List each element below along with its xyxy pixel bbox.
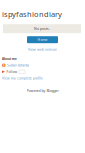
- button[interactable]: B: [2, 63, 29, 68]
- staticText: View my complete profile: [2, 76, 43, 80]
- staticText: ispyfashiondiary: [2, 9, 62, 19]
- staticText: No posts.: [34, 26, 50, 31]
- button[interactable]: View web version: [28, 47, 57, 52]
- staticText: About me: [2, 57, 17, 61]
- staticText: View web version: [28, 47, 57, 52]
- staticText: Home: [37, 37, 47, 42]
- button[interactable]: View my complete profile: [2, 76, 43, 80]
- staticText: B: [3, 63, 5, 67]
- staticText: Powered by Blogger: [26, 88, 58, 93]
- staticText: Sultan Bifanta: [7, 63, 29, 68]
- button[interactable]: Home: [27, 36, 58, 43]
- staticText: Follow: [6, 70, 17, 74]
- button[interactable]: Follow: [2, 70, 25, 74]
